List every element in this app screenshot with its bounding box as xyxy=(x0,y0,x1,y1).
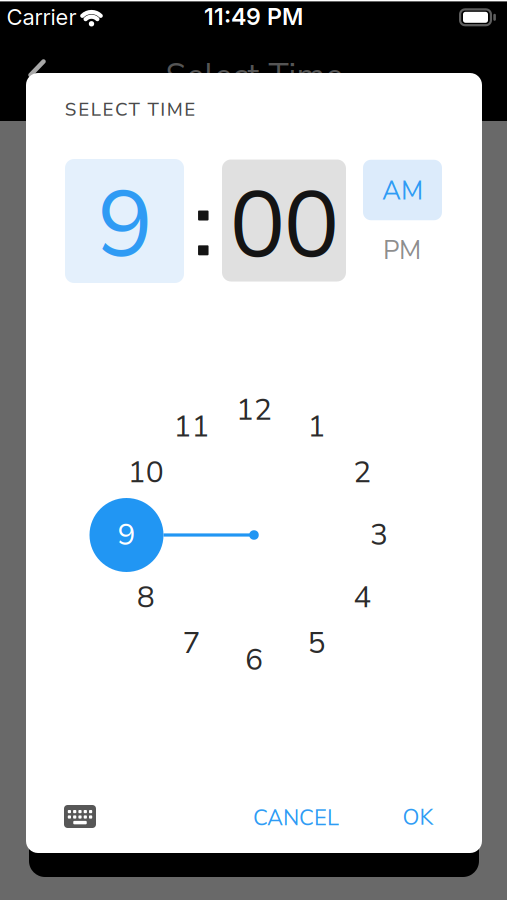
staticText: 1 xyxy=(307,406,325,447)
staticText: 2 xyxy=(353,452,371,493)
button[interactable]: PM xyxy=(362,222,441,279)
staticText: 11 xyxy=(173,406,209,447)
button[interactable]: 5 xyxy=(295,622,337,664)
button[interactable]: 1 xyxy=(295,406,337,448)
button[interactable]: 4 xyxy=(341,576,383,618)
staticText: 11:49 PM xyxy=(204,2,303,31)
staticText: CANCEL xyxy=(253,803,339,833)
button[interactable]: 9 xyxy=(105,514,147,556)
button[interactable]: 12 xyxy=(233,389,275,431)
staticText: 00 xyxy=(229,162,339,289)
staticText: 5 xyxy=(307,623,325,664)
button[interactable]: 8 xyxy=(125,576,167,618)
staticText: OK xyxy=(402,802,433,832)
staticText: AM xyxy=(382,173,423,209)
button[interactable]: 2 xyxy=(341,451,383,493)
staticText: SELECT TIME xyxy=(65,97,195,122)
staticText: 9 xyxy=(97,161,153,289)
staticText: 12 xyxy=(236,389,272,430)
button[interactable]: Switch to text input xyxy=(56,792,104,840)
staticText: 3 xyxy=(370,514,388,555)
staticText: 8 xyxy=(137,577,155,618)
button[interactable]: 6 xyxy=(233,639,275,681)
button[interactable]: CANCEL xyxy=(238,795,354,841)
button[interactable]: AM xyxy=(363,160,442,220)
button[interactable]: OK xyxy=(386,794,450,840)
staticText: Carrier xyxy=(6,4,76,30)
staticText: 9 xyxy=(117,514,135,555)
button[interactable]: 9 xyxy=(65,159,184,283)
button[interactable]: 3 xyxy=(358,514,400,556)
button[interactable]: 10 xyxy=(125,451,167,493)
staticText: 10 xyxy=(128,452,164,493)
staticText: 4 xyxy=(353,577,371,618)
staticText: 7 xyxy=(182,623,200,664)
button[interactable]: 00 xyxy=(222,159,346,281)
button[interactable]: Back xyxy=(15,46,59,90)
button[interactable]: 7 xyxy=(170,622,212,664)
button[interactable]: 11 xyxy=(170,406,212,448)
staticText: 6 xyxy=(245,639,263,680)
staticText: PM xyxy=(383,233,421,268)
staticText: Select Time xyxy=(165,53,343,99)
